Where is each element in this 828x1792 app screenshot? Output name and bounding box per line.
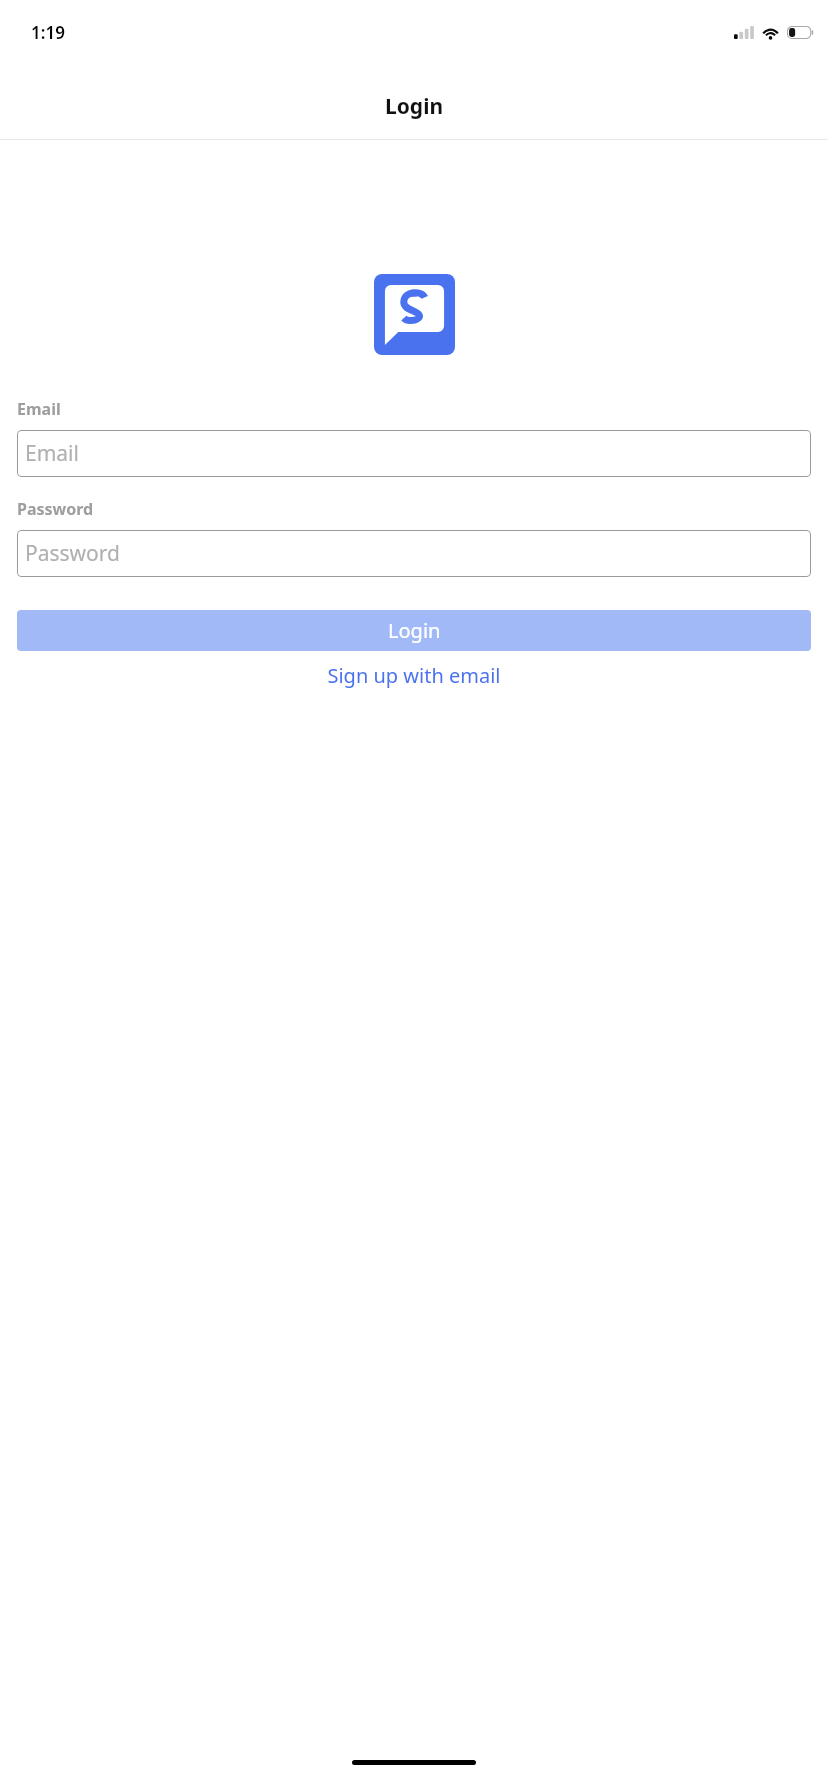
staticText: Email	[25, 439, 79, 468]
button[interactable]: Login	[17, 610, 811, 651]
other: Wi-Fi	[761, 26, 780, 39]
staticText: 1:19	[31, 21, 65, 44]
button[interactable]: Sign up with email	[17, 658, 811, 692]
other: Battery	[787, 26, 814, 39]
staticText: Password	[25, 539, 120, 568]
staticText: Login	[385, 92, 444, 121]
staticText: Password	[17, 498, 94, 520]
button[interactable]: Email	[17, 430, 811, 477]
button[interactable]: Password	[17, 530, 811, 577]
staticText: Login	[388, 617, 441, 644]
other: Cellular signal	[734, 26, 754, 39]
staticText: Email	[17, 398, 61, 420]
staticText: Sign up with email	[327, 662, 501, 689]
